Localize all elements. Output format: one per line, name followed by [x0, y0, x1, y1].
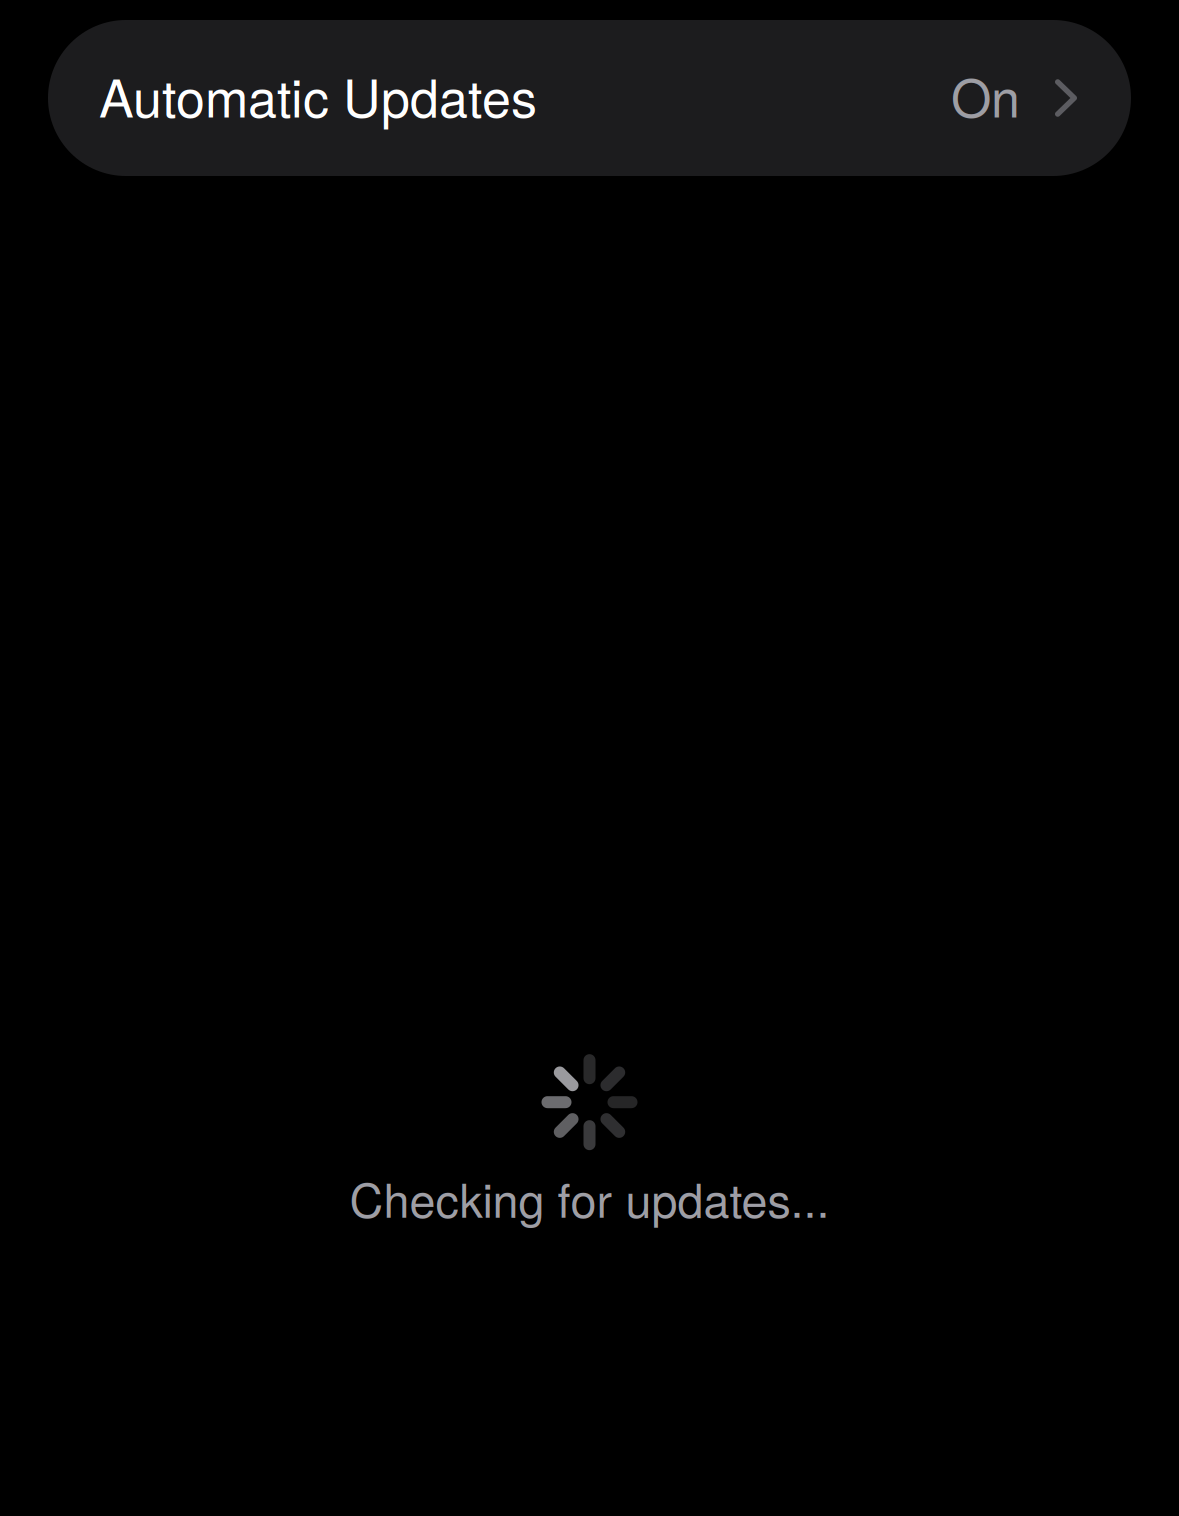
- staticText: Automatic Updates: [99, 58, 537, 132]
- staticText: Checking for updates...: [349, 1164, 829, 1231]
- button[interactable]: Automatic Updates: [48, 20, 1131, 176]
- staticText: On: [951, 58, 1020, 132]
